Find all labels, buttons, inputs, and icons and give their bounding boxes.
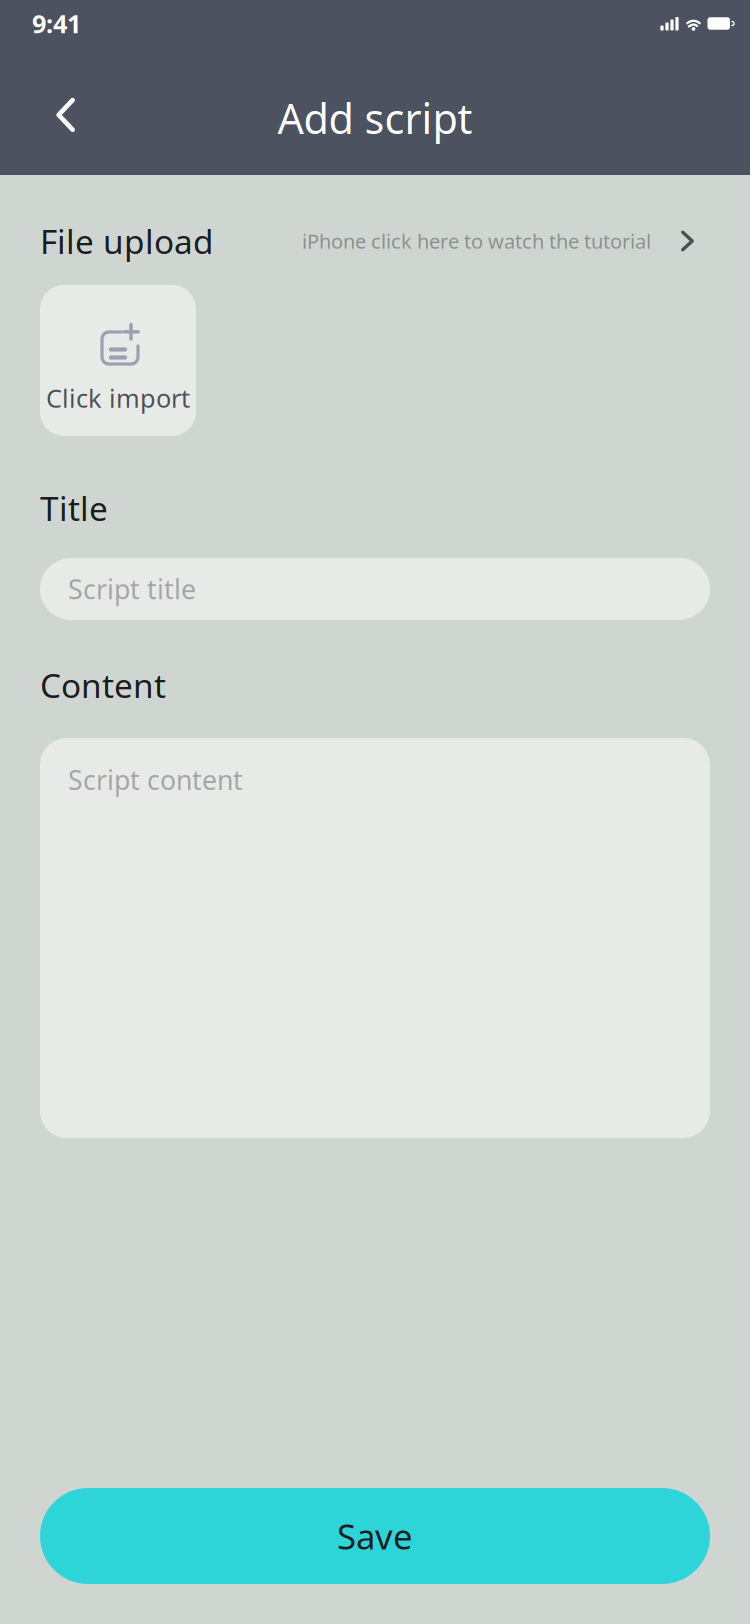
button[interactable]: Script content (40, 738, 710, 1138)
button[interactable]: Save (40, 1488, 710, 1584)
button[interactable]: Back (34, 70, 98, 160)
staticText: Content (40, 663, 166, 707)
staticText: Add script (277, 91, 472, 145)
button[interactable]: Click import (40, 285, 196, 436)
staticText: iPhone click here to watch the tutorial (302, 228, 651, 254)
button[interactable]: iPhone click here to watch the tutorial (299, 228, 710, 254)
staticText: File upload (40, 219, 214, 263)
staticText: 9:41 (32, 7, 81, 40)
button[interactable]: Script title (40, 558, 710, 620)
staticText: Script title (68, 571, 196, 607)
staticText: Save (337, 1513, 413, 1559)
staticText: Click import (46, 381, 190, 415)
staticText: Title (40, 486, 108, 530)
staticText: Script content (68, 762, 243, 797)
